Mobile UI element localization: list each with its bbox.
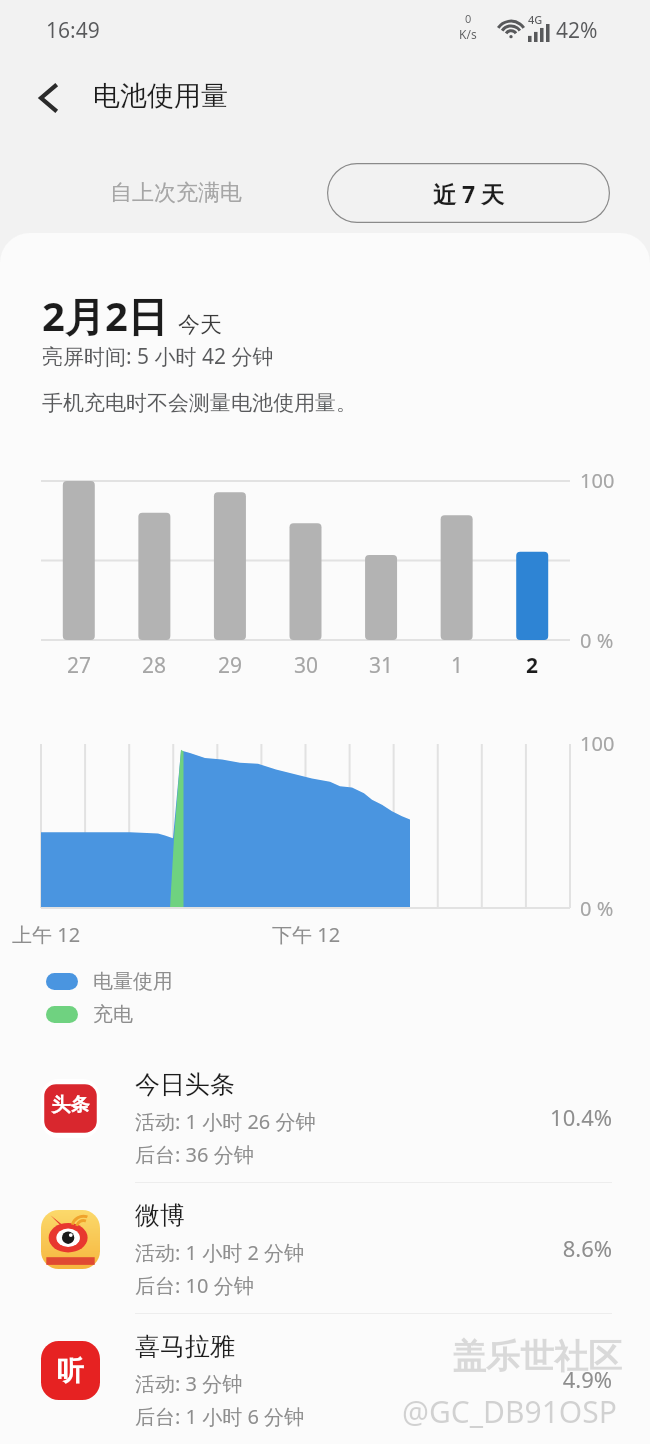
staticText: 100 (580, 467, 615, 494)
staticText: 头条 (41, 1093, 100, 1138)
staticText: @GC_DB91OSP (402, 1391, 617, 1432)
staticText: 27 (54, 651, 104, 680)
staticText: 自上次充满电 (110, 179, 242, 207)
staticText: 今天 (178, 311, 222, 339)
staticText: 后台: 10 分钟 (135, 1272, 254, 1299)
button[interactable]: 自上次充满电 (110, 170, 242, 216)
staticText: 亮屏时间: 5 小时 42 分钟 (42, 342, 274, 371)
staticText: 手机充电时不会测量电池使用量。 (42, 390, 357, 416)
staticText: 电池使用量 (93, 79, 228, 113)
staticText: 电量使用 (93, 969, 173, 994)
button[interactable]: 听 (0, 1317, 650, 1444)
staticText: 活动: 3 分钟 (135, 1370, 243, 1397)
button[interactable]: 头条 (0, 1055, 650, 1186)
staticText: 0 % (580, 627, 614, 654)
staticText: 上午 12 (12, 921, 81, 948)
staticText: 1 (432, 651, 482, 680)
button[interactable]: 微博 (0, 1186, 650, 1317)
staticText: 16:49 (46, 16, 100, 45)
staticText: 2 (507, 651, 557, 680)
staticText: 0 (465, 11, 472, 26)
staticText: 8.6% (430, 1233, 612, 1263)
staticText: 喜马拉雅 (135, 1331, 235, 1362)
staticText: 0 % (580, 895, 614, 922)
staticText: 盖乐世社区 (452, 1335, 622, 1378)
staticText: 充电 (93, 1002, 133, 1027)
staticText: 4.9% (430, 1364, 612, 1394)
staticText: 活动: 1 小时 2 分钟 (135, 1239, 305, 1266)
staticText: 28 (129, 651, 179, 680)
staticText: 100 (580, 730, 615, 757)
button[interactable]: Back (22, 70, 78, 126)
staticText: 2月2日 (42, 288, 168, 343)
staticText: 4G (528, 12, 543, 27)
staticText: 后台: 1 小时 6 分钟 (135, 1403, 305, 1430)
staticText: 31 (356, 651, 406, 680)
staticText: 微博 (135, 1200, 185, 1231)
staticText: 10.4% (430, 1102, 612, 1132)
staticText: 听 (41, 1354, 100, 1400)
staticText: 30 (281, 651, 331, 680)
staticText: 42% (556, 16, 598, 45)
staticText: 今日头条 (135, 1069, 235, 1100)
staticText: 活动: 1 小时 26 分钟 (135, 1108, 316, 1135)
button[interactable]: 近 7 天 (327, 163, 610, 223)
staticText: 下午 12 (272, 921, 341, 948)
staticText: 29 (205, 651, 255, 680)
staticText: K/s (459, 26, 477, 42)
staticText: 后台: 36 分钟 (135, 1141, 254, 1168)
staticText: 近 7 天 (433, 178, 505, 209)
